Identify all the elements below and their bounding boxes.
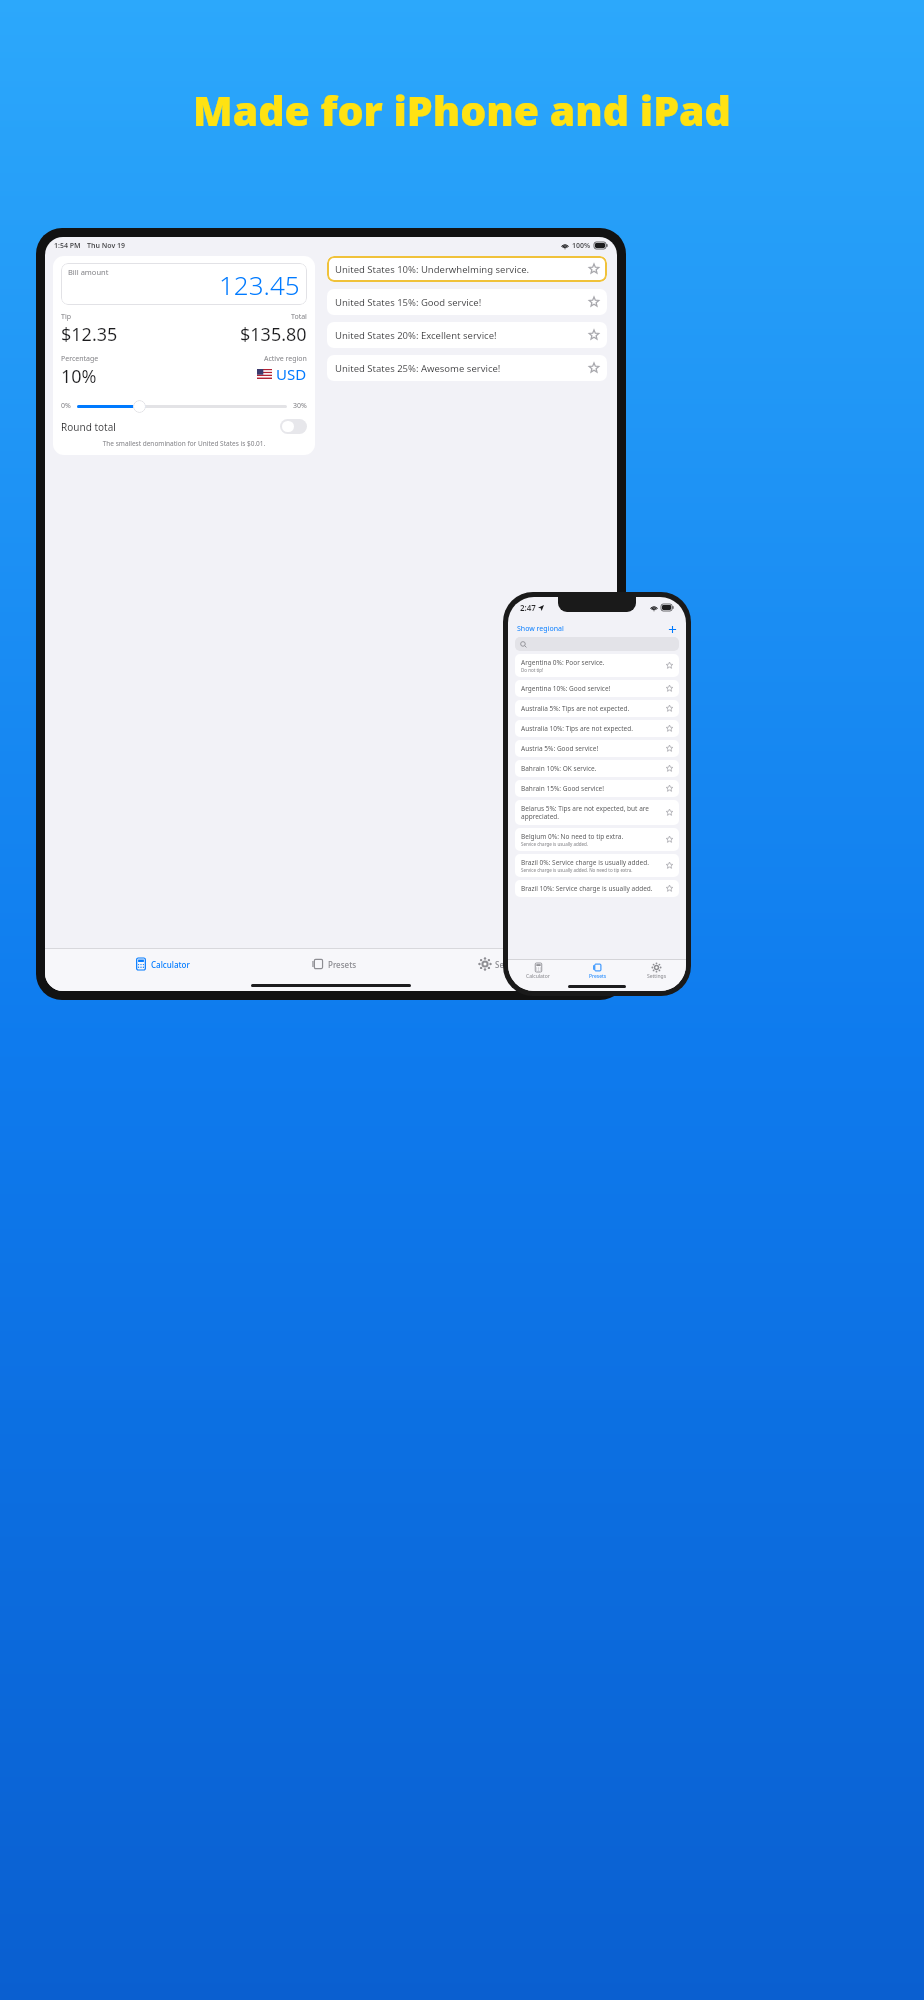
button[interactable]: Austria 5%: Good service! bbox=[515, 740, 679, 757]
staticText: $12.35 bbox=[61, 322, 118, 347]
staticText: Settings bbox=[495, 959, 527, 970]
button[interactable]: Australia 10%: Tips are not expected. bbox=[515, 720, 679, 737]
staticText: Percentage bbox=[61, 354, 99, 364]
button[interactable]: Round total bbox=[61, 419, 307, 434]
button[interactable]: Calculator bbox=[130, 955, 195, 973]
staticText: Calculator bbox=[526, 973, 550, 980]
staticText: Argentina 10%: Good service! bbox=[521, 684, 611, 693]
button[interactable]: United States 10%: Underwhelming service… bbox=[327, 256, 607, 282]
button[interactable]: Belgium 0%: No need to tip extra. bbox=[515, 828, 679, 851]
staticText: $135.80 bbox=[240, 322, 307, 347]
staticText: 123.45 bbox=[219, 267, 300, 301]
button[interactable]: Brazil 0%: Service charge is usually add… bbox=[515, 854, 679, 877]
staticText: Presets bbox=[328, 959, 357, 970]
staticText: Belgium 0%: No need to tip extra. bbox=[521, 832, 624, 841]
button[interactable]: Australia 5%: Tips are not expected. bbox=[515, 700, 679, 717]
staticText: Service charge is usually added. No need… bbox=[521, 867, 633, 873]
button[interactable]: Tip percentage slider bbox=[133, 400, 146, 413]
staticText: Round total bbox=[61, 420, 116, 434]
staticText: Made for iPhone and iPad bbox=[193, 82, 731, 138]
staticText: Settings bbox=[647, 973, 667, 980]
staticText: Calculator bbox=[151, 959, 190, 970]
button[interactable]: United States 20%: Excellent service! bbox=[327, 322, 607, 348]
staticText: Service charge is usually added. bbox=[521, 841, 589, 847]
staticText: Do not tip! bbox=[521, 667, 544, 673]
staticText: USD bbox=[276, 364, 307, 384]
staticText: Bahrain 15%: Good service! bbox=[521, 784, 605, 793]
staticText: Brazil 10%: Service charge is usually ad… bbox=[521, 884, 653, 893]
button[interactable]: Show regional bbox=[515, 622, 566, 636]
staticText: Argentina 0%: Poor service. bbox=[521, 658, 605, 667]
button[interactable]: Belarus 5%: Tips are not expected, but a… bbox=[515, 800, 679, 825]
staticText: 2:47 bbox=[520, 602, 536, 613]
staticText: 1:54 PM bbox=[54, 241, 81, 251]
staticText: United States 15%: Good service! bbox=[335, 296, 589, 309]
button[interactable]: Search bbox=[515, 637, 679, 651]
button[interactable]: Bahrain 10%: OK service. bbox=[515, 760, 679, 777]
button[interactable]: United States 15%: Good service! bbox=[327, 289, 607, 315]
staticText: Tip bbox=[61, 312, 72, 322]
button[interactable]: Presets bbox=[307, 955, 362, 973]
button[interactable]: Settings bbox=[474, 955, 532, 973]
staticText: United States 25%: Awesome service! bbox=[335, 362, 589, 375]
button[interactable]: Add preset bbox=[666, 623, 679, 636]
button[interactable]: Calculator bbox=[508, 962, 568, 981]
staticText: 30% bbox=[293, 401, 307, 411]
staticText: The smallest denomination for United Sta… bbox=[61, 439, 307, 448]
button[interactable]: Brazil 10%: Service charge is usually ad… bbox=[515, 880, 679, 897]
staticText: Total bbox=[291, 312, 307, 322]
button[interactable]: USD bbox=[257, 364, 307, 384]
staticText: Brazil 0%: Service charge is usually add… bbox=[521, 858, 649, 867]
staticText: United States 20%: Excellent service! bbox=[335, 329, 589, 342]
staticText: 100% bbox=[572, 241, 591, 251]
staticText: Thu Nov 19 bbox=[87, 241, 126, 251]
staticText: Belarus 5%: Tips are not expected, but a… bbox=[521, 804, 662, 821]
staticText: Austria 5%: Good service! bbox=[521, 744, 599, 753]
staticText: Australia 10%: Tips are not expected. bbox=[521, 724, 633, 733]
button[interactable]: Bill amount bbox=[61, 263, 307, 305]
staticText: Active region bbox=[264, 354, 307, 364]
staticText: Presets bbox=[589, 973, 607, 980]
staticText: Show regional bbox=[517, 624, 564, 634]
staticText: 10% bbox=[61, 364, 97, 389]
button[interactable]: Settings bbox=[627, 962, 686, 981]
button[interactable]: Presets bbox=[568, 962, 627, 981]
staticText: United States 10%: Underwhelming service… bbox=[335, 263, 589, 276]
staticText: Bill amount bbox=[68, 267, 109, 277]
button[interactable]: Bahrain 15%: Good service! bbox=[515, 780, 679, 797]
staticText: Bahrain 10%: OK service. bbox=[521, 764, 597, 773]
staticText: Australia 5%: Tips are not expected. bbox=[521, 704, 630, 713]
button[interactable]: Argentina 0%: Poor service. bbox=[515, 654, 679, 677]
button[interactable]: United States 25%: Awesome service! bbox=[327, 355, 607, 381]
staticText: 0% bbox=[61, 401, 71, 411]
button[interactable]: Argentina 10%: Good service! bbox=[515, 680, 679, 697]
